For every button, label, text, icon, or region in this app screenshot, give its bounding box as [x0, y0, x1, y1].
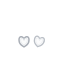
button[interactable]: Heart stud earrings, product photo	[13, 7, 51, 57]
